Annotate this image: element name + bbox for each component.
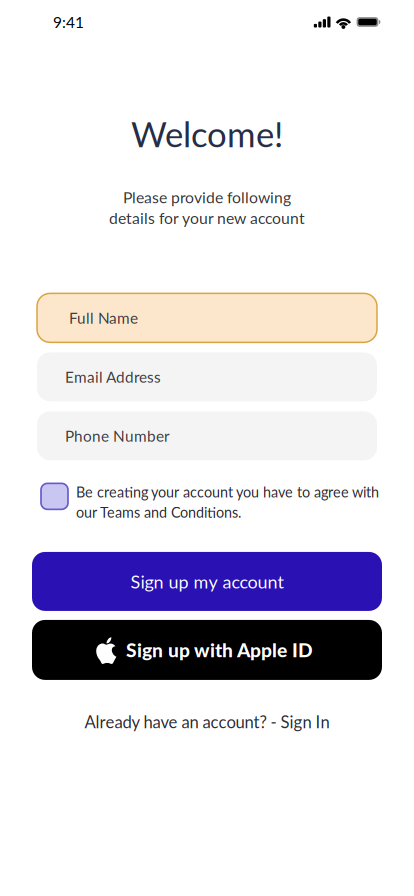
staticText: Email Address [65,368,161,386]
staticText: Sign up with Apple ID [126,638,313,661]
staticText: Be creating your account you have to agr… [76,483,379,501]
staticText: Please provide following [123,188,291,206]
button[interactable]: Full Name [37,293,377,342]
button[interactable]: Email Address [37,352,377,401]
staticText: Full Name [69,309,138,327]
button[interactable]: Be creating your account you have to agr… [0,483,414,521]
staticText: Phone Number [65,427,170,445]
staticText: 9:41 [53,13,84,31]
button[interactable]: Sign up my account [0,552,414,611]
staticText: details for your new account [109,208,305,227]
button[interactable]: Already have an account? - Sign In [84,712,329,732]
staticText: Sign up my account [130,571,283,592]
staticText: Already have an account? - Sign In [84,712,329,732]
button[interactable]: Sign up with Apple ID [0,620,414,680]
staticText: our Teams and Conditions. [76,504,241,521]
button[interactable]: Phone Number [37,411,377,460]
staticText: Welcome! [131,113,283,155]
